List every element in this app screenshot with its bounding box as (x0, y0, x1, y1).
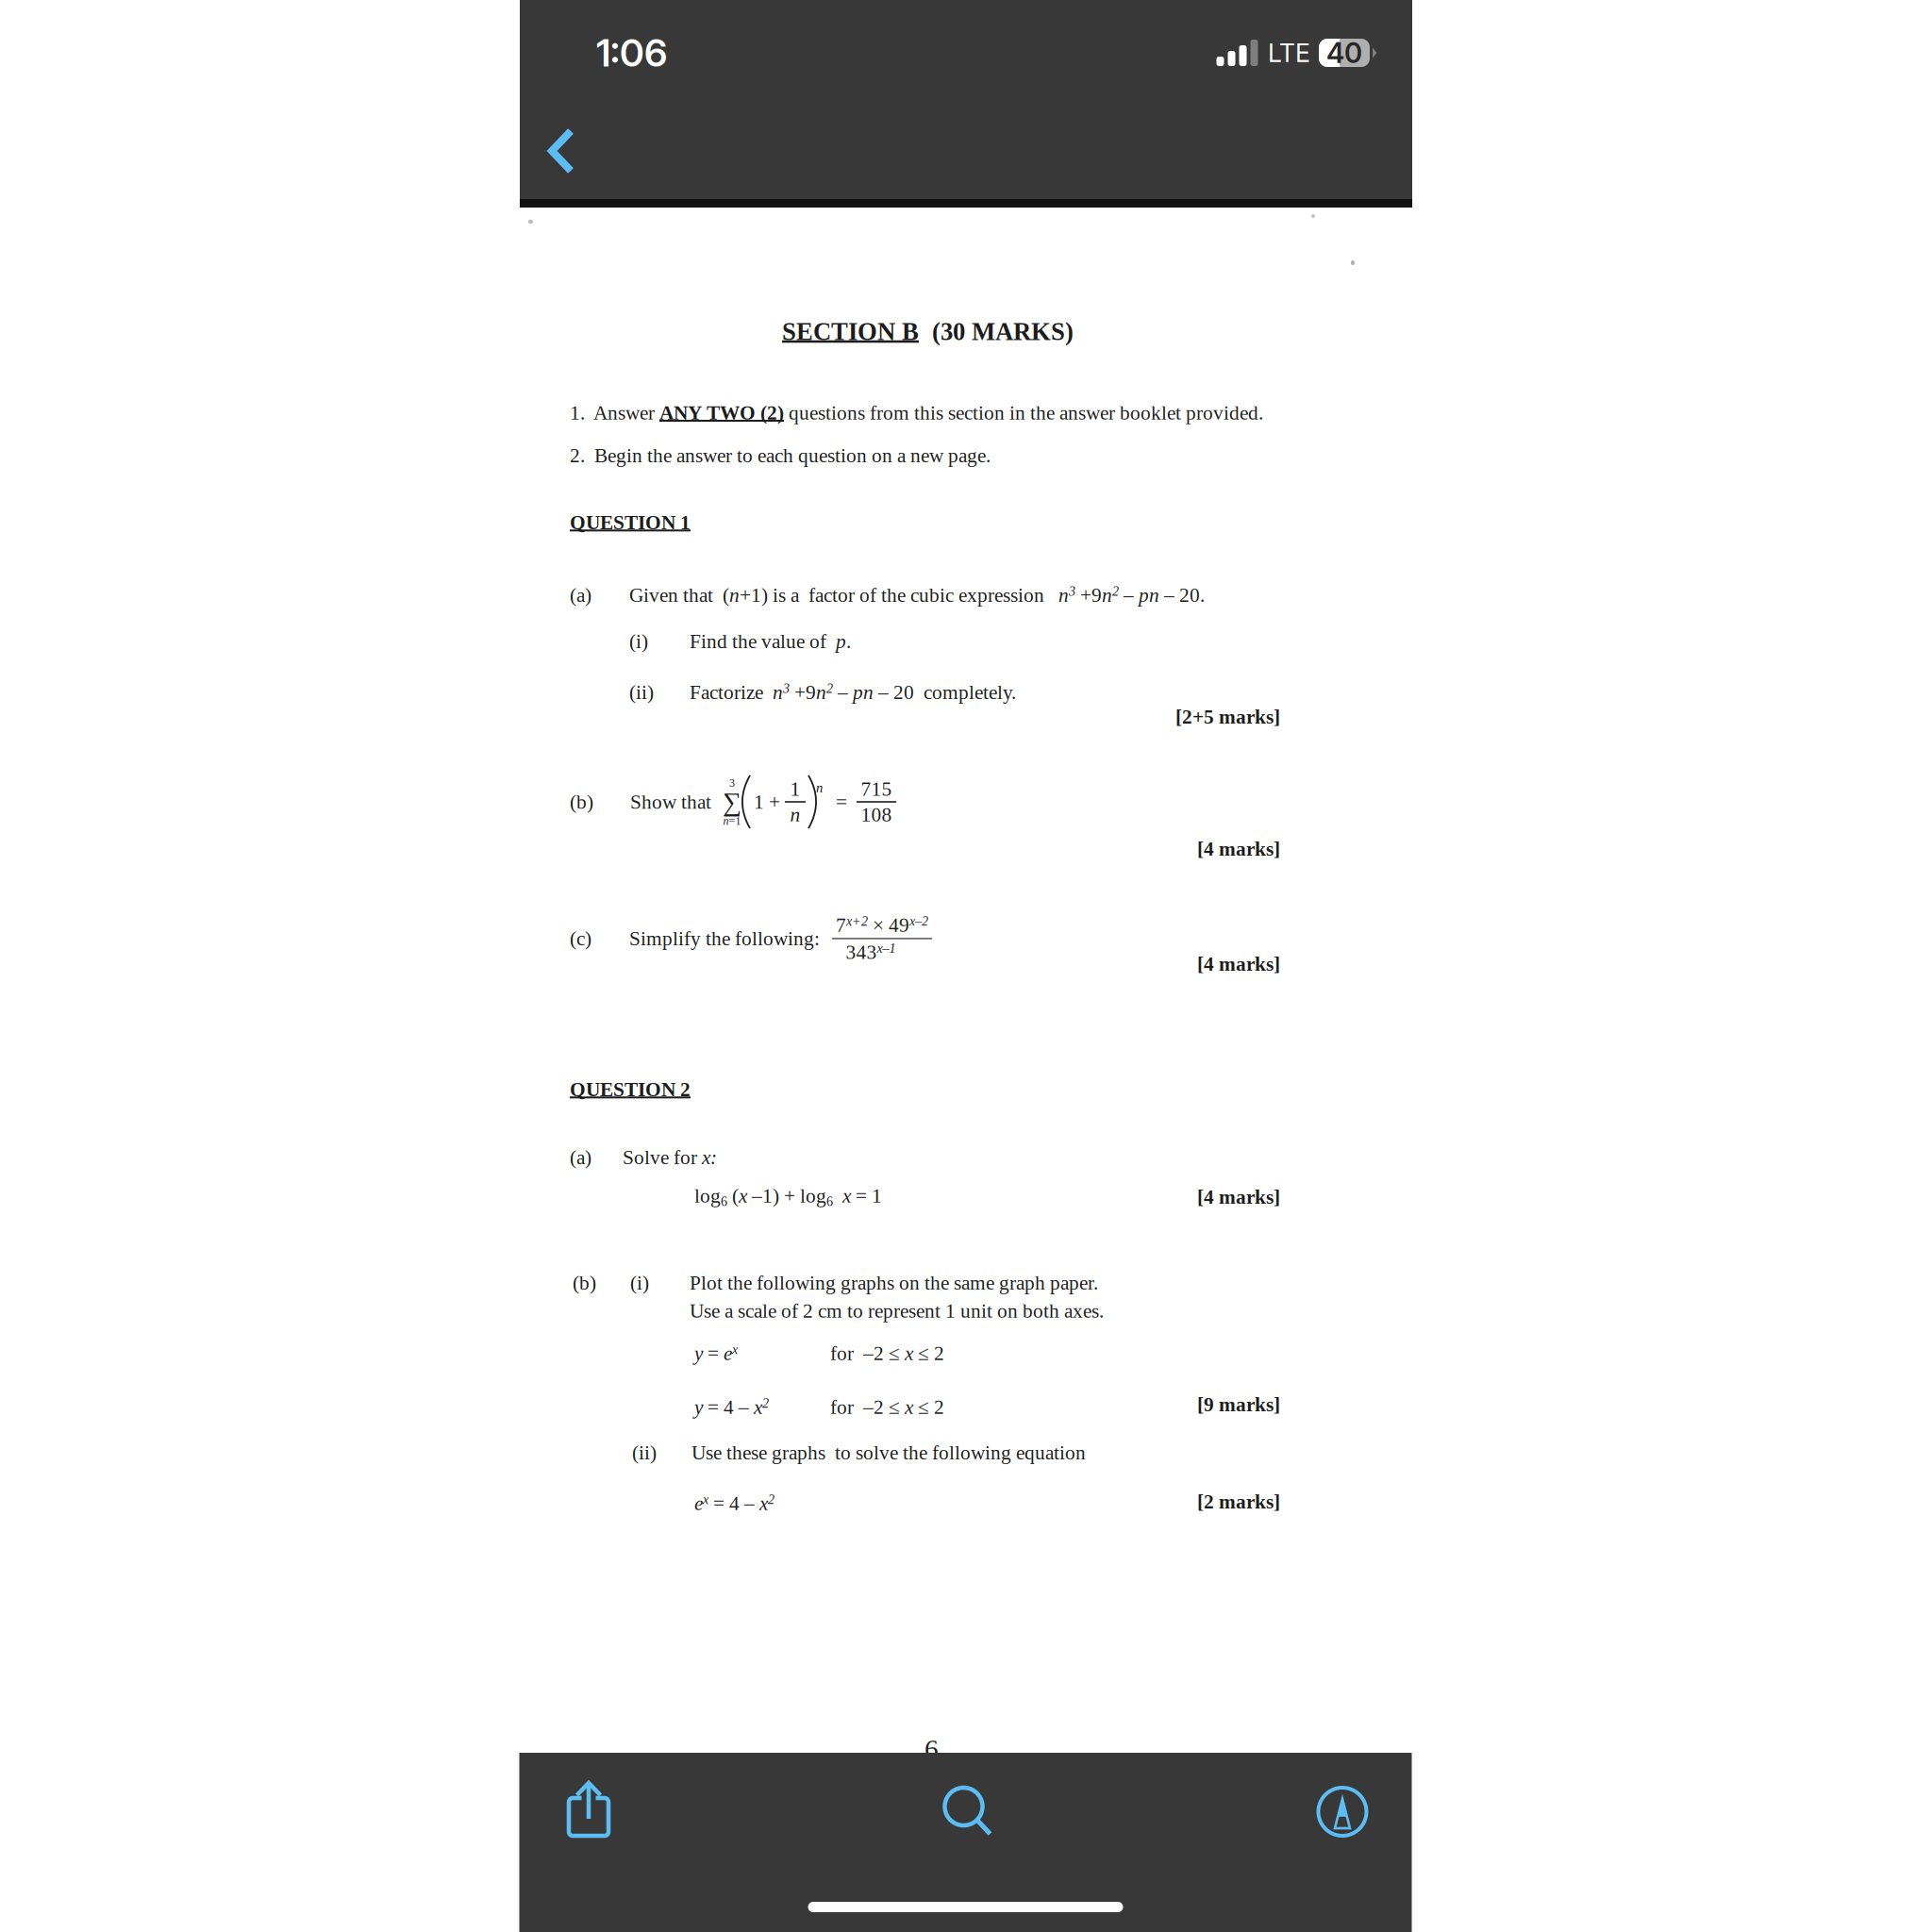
staticText: Find the value of p. (690, 630, 851, 652)
staticText: Use these graphs to solve the following … (691, 1441, 1086, 1464)
staticText: y = ex (694, 1342, 738, 1364)
button[interactable]: Markup (1296, 1774, 1413, 1874)
staticText: QUESTION 1 (570, 511, 691, 534)
staticText: (a) (570, 584, 591, 606)
staticText: Plot the following graphs on the same gr… (690, 1272, 1098, 1294)
staticText: 40 (1326, 36, 1362, 70)
staticText: log6 (x –1) + log6 x = 1 (694, 1185, 882, 1209)
staticText: y = 4 – x2 (694, 1396, 769, 1418)
staticText: (a) (570, 1146, 591, 1168)
staticText: = (836, 791, 847, 813)
button[interactable]: Search (920, 1774, 1039, 1874)
staticText: 1:06 (596, 30, 667, 76)
staticText: (ii) (632, 1441, 657, 1464)
staticText: Show that (630, 791, 711, 813)
staticText: [2 marks] (1197, 1491, 1280, 1513)
staticText: 2. Begin the answer to each question on … (570, 444, 991, 467)
staticText: 1. Answer ANY TWO (2) questions from thi… (570, 402, 1263, 424)
staticText: (i) (629, 630, 648, 652)
staticText: Simplify the following: (629, 927, 820, 950)
staticText: Use a scale of 2 cm to represent 1 unit … (690, 1300, 1104, 1322)
staticText: n (790, 804, 800, 826)
staticText: 1 + (754, 791, 785, 813)
staticText: [2+5 marks] (1175, 706, 1280, 728)
staticText: 6 (924, 1734, 939, 1765)
staticText: n=1 (723, 815, 741, 827)
button[interactable]: Share (541, 1774, 661, 1868)
staticText: 3 (729, 777, 735, 789)
staticText: 7x+2 × 49x–2 (836, 914, 928, 936)
staticText: LTE (1268, 38, 1310, 68)
staticText: 715 (861, 778, 892, 800)
staticText: for –2 ≤ x ≤ 2 (830, 1396, 944, 1418)
staticText: ∑ (723, 787, 741, 817)
staticText: (c) (570, 927, 591, 950)
staticText: 1 (790, 778, 800, 800)
staticText: for –2 ≤ x ≤ 2 (830, 1342, 944, 1364)
staticText: Solve for x: (623, 1146, 717, 1168)
staticText: [4 marks] (1197, 1186, 1280, 1208)
staticText: SECTION B (30 MARKS) (782, 318, 1074, 345)
staticText: n (816, 780, 823, 795)
staticText: [9 marks] (1197, 1393, 1280, 1416)
staticText: 108 (861, 804, 892, 826)
staticText: (b) (570, 791, 593, 813)
staticText: (b) (573, 1272, 596, 1294)
staticText: Given that (n+1) is a factor of the cubi… (629, 584, 1205, 606)
staticText: ex = 4 – x2 (694, 1492, 774, 1514)
staticText: 343x–1 (846, 941, 896, 963)
staticText: [4 marks] (1197, 838, 1280, 860)
staticText: (ii) (629, 681, 654, 703)
staticText: (i) (630, 1272, 649, 1294)
staticText: Factorize n3 +9n2 – pn – 20 completely. (690, 681, 1016, 703)
staticText: [4 marks] (1197, 953, 1280, 975)
button[interactable]: Back (520, 116, 620, 186)
staticText: QUESTION 2 (570, 1078, 691, 1101)
